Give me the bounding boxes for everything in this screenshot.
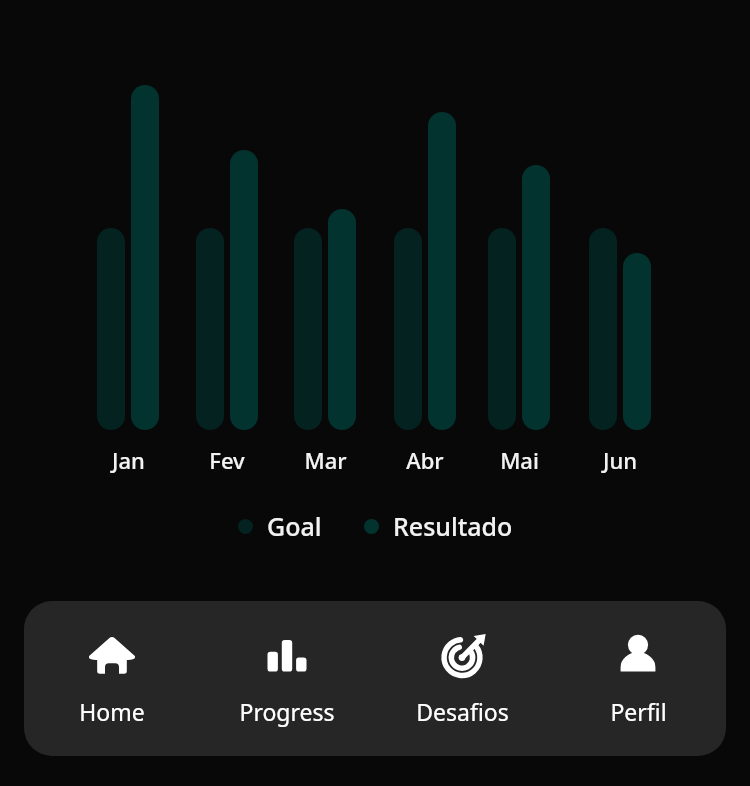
button[interactable]: Progress [199,601,374,756]
staticText: Abr [406,445,444,475]
staticText: Jun [603,445,637,475]
staticText: Mar [304,445,347,475]
staticText: Progress [239,696,335,727]
button[interactable]: Perfil [550,601,726,756]
button[interactable]: Desafios [374,601,550,756]
staticText: Perfil [610,696,667,727]
staticText: Resultado [393,509,513,543]
staticText: Mai [500,445,539,475]
staticText: Jan [112,445,145,475]
staticText: Desafios [416,696,509,727]
staticText: Goal [267,509,322,543]
staticText: Home [79,696,145,727]
button[interactable]: Goal [238,509,322,543]
button[interactable]: Resultado [364,509,513,543]
button[interactable]: Home [24,601,199,756]
staticText: Fev [209,445,245,475]
